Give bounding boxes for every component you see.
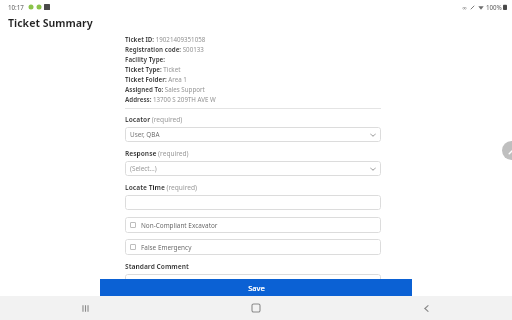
staticText: Ticket Type: Ticket (125, 65, 181, 73)
staticText: ∞ (462, 4, 467, 11)
button[interactable]: Back (341, 296, 512, 320)
button[interactable]: Recent apps (0, 296, 170, 320)
staticText: (Select...) (130, 164, 370, 173)
button[interactable] (125, 195, 381, 210)
staticText: User, QBA (130, 130, 370, 139)
staticText: 10:17 (8, 3, 24, 11)
staticText: Ticket ID: 19021409351058 (125, 35, 206, 43)
staticText: Standard Comment (125, 262, 189, 271)
staticText (130, 277, 370, 286)
staticText: 100% (486, 3, 502, 11)
staticText: Registration code: S00133 (125, 45, 204, 53)
staticText: Response (required) (125, 149, 189, 158)
staticText: Ticket Folder: Area 1 (125, 75, 187, 83)
staticText: Assigned To: Sales Support (125, 85, 205, 93)
button[interactable]: False Emergency (125, 239, 381, 255)
button[interactable]: User, QBA (125, 127, 381, 142)
button[interactable]: Edit (502, 141, 512, 160)
button[interactable]: (Select...) (125, 161, 381, 176)
staticText: Facility Type: (125, 55, 165, 63)
button[interactable]: Home (170, 296, 341, 320)
button[interactable]: Non-Compliant Excavator (125, 217, 381, 233)
staticText: Save (248, 283, 265, 293)
staticText: Locator (required) (125, 115, 183, 124)
staticText: Address: 13700 S 209TH AVE W (125, 95, 216, 103)
staticText: False Emergency (141, 243, 192, 252)
staticText: Non-Compliant Excavator (141, 221, 218, 230)
button[interactable]: Save (100, 279, 412, 296)
staticText: Ticket Summary (8, 16, 93, 30)
button[interactable] (125, 274, 381, 289)
staticText: Locate Time (required) (125, 183, 197, 192)
